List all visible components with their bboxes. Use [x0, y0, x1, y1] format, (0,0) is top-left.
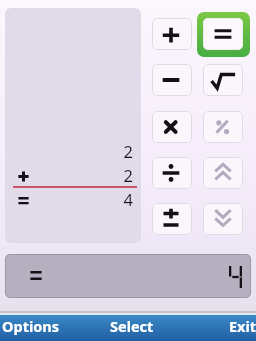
staticText: 4	[5, 188, 133, 210]
button[interactable]: Scroll down	[203, 203, 243, 235]
staticText: 2	[5, 164, 133, 186]
staticText: 2	[5, 140, 133, 162]
staticText: Select	[110, 316, 154, 336]
button[interactable]: Exit	[171, 315, 256, 341]
button[interactable]: Percent	[203, 111, 243, 143]
button[interactable]: Square root	[203, 64, 243, 96]
staticText: Options	[2, 316, 60, 336]
button[interactable]: Equals	[203, 18, 243, 50]
button[interactable]: Calculation display	[5, 8, 141, 243]
staticText: Exit	[229, 316, 256, 336]
button[interactable]: Select	[86, 315, 171, 341]
button[interactable]: Multiply	[152, 111, 192, 143]
button[interactable]: Minus	[152, 64, 192, 96]
button[interactable]: Divide	[152, 157, 192, 189]
button[interactable]: Options	[0, 315, 86, 341]
button[interactable]: Plus	[152, 18, 192, 50]
button[interactable]: Scroll up	[203, 157, 243, 189]
button[interactable]: Result	[5, 254, 251, 298]
button[interactable]: Sign change	[152, 203, 192, 235]
